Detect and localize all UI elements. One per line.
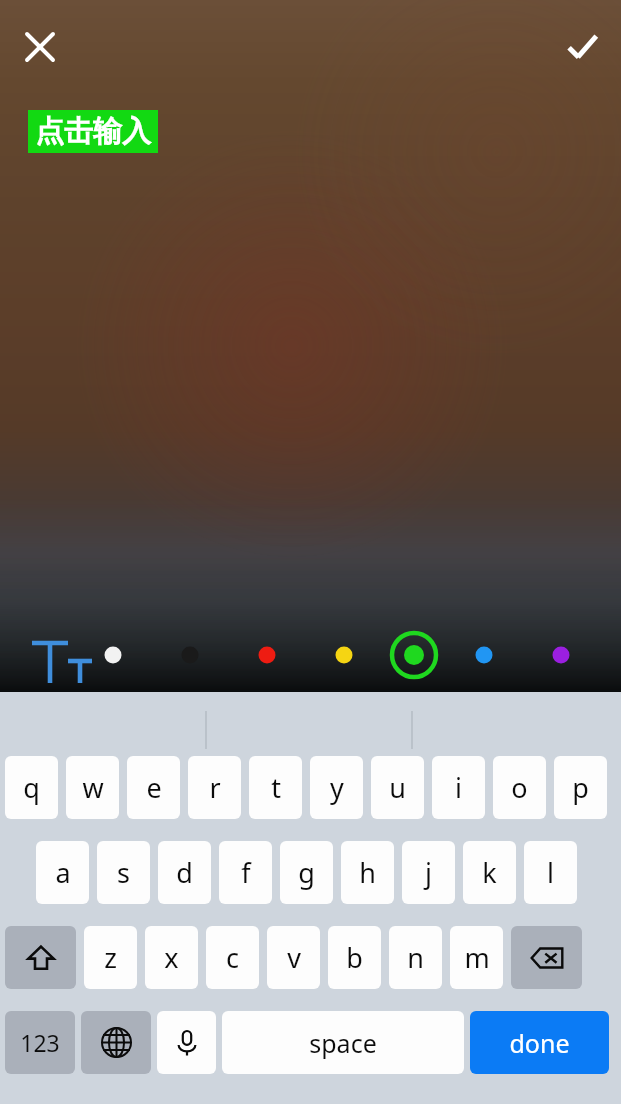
staticText: q — [23, 769, 40, 806]
button[interactable]: Blue — [467, 638, 501, 672]
button[interactable]: Text style — [0, 624, 96, 686]
staticText: i — [455, 769, 462, 806]
button[interactable]: e — [127, 756, 180, 819]
staticText: space — [309, 1026, 377, 1060]
button[interactable]: done — [470, 1011, 609, 1074]
staticText: v — [287, 939, 301, 976]
staticText: h — [359, 854, 376, 891]
button[interactable]: Voice input — [157, 1011, 216, 1074]
button[interactable]: q — [5, 756, 58, 819]
button[interactable]: Red — [250, 638, 284, 672]
button[interactable]: r — [188, 756, 241, 819]
staticText: b — [346, 939, 363, 976]
button[interactable]: Shift — [5, 926, 76, 989]
button[interactable]: Purple — [544, 638, 578, 672]
staticText: o — [511, 769, 528, 806]
button[interactable]: n — [389, 926, 442, 989]
staticText: s — [117, 854, 130, 891]
button[interactable]: b — [328, 926, 381, 989]
staticText: done — [509, 1026, 570, 1060]
staticText: m — [464, 939, 490, 976]
staticText: n — [407, 939, 424, 976]
staticText: 123 — [20, 1027, 60, 1058]
button[interactable]: u — [371, 756, 424, 819]
staticText: 点击输入 — [35, 113, 151, 150]
staticText: w — [82, 769, 104, 806]
button[interactable]: d — [158, 841, 211, 904]
staticText: r — [209, 769, 221, 806]
button[interactable]: t — [249, 756, 302, 819]
button[interactable]: 点击输入 — [35, 113, 151, 150]
button[interactable]: space — [222, 1011, 464, 1074]
button[interactable]: y — [310, 756, 363, 819]
button[interactable]: k — [463, 841, 516, 904]
button[interactable]: Black — [173, 638, 207, 672]
staticText: t — [271, 769, 281, 806]
button[interactable]: l — [524, 841, 577, 904]
staticText: k — [482, 854, 497, 891]
staticText: d — [176, 854, 193, 891]
button[interactable]: c — [206, 926, 259, 989]
staticText: u — [389, 769, 406, 806]
staticText: j — [425, 854, 432, 891]
staticText: z — [104, 939, 117, 976]
button[interactable]: x — [145, 926, 198, 989]
button[interactable]: m — [450, 926, 503, 989]
button[interactable]: h — [341, 841, 394, 904]
button[interactable]: f — [219, 841, 272, 904]
staticText: x — [164, 939, 179, 976]
button[interactable]: Switch language — [81, 1011, 151, 1074]
button[interactable]: i — [432, 756, 485, 819]
staticText: e — [146, 769, 162, 806]
button[interactable]: s — [97, 841, 150, 904]
button[interactable]: w — [66, 756, 119, 819]
button[interactable]: g — [280, 841, 333, 904]
button[interactable]: Yellow — [327, 638, 361, 672]
staticText: g — [298, 854, 315, 891]
staticText: y — [330, 769, 344, 806]
staticText: l — [547, 854, 554, 891]
button[interactable]: j — [402, 841, 455, 904]
staticText: f — [241, 854, 251, 891]
staticText: c — [226, 939, 239, 976]
button[interactable]: 123 — [5, 1011, 75, 1074]
button[interactable]: p — [554, 756, 607, 819]
staticText: a — [55, 854, 71, 891]
button[interactable]: Green — [390, 631, 438, 679]
button[interactable]: o — [493, 756, 546, 819]
button[interactable]: z — [84, 926, 137, 989]
button[interactable]: White — [96, 638, 130, 672]
button[interactable]: v — [267, 926, 320, 989]
staticText: p — [572, 769, 589, 806]
button[interactable]: Done — [554, 19, 610, 75]
button[interactable]: a — [36, 841, 89, 904]
button[interactable]: Backspace — [511, 926, 582, 989]
button[interactable]: Close — [12, 19, 68, 75]
